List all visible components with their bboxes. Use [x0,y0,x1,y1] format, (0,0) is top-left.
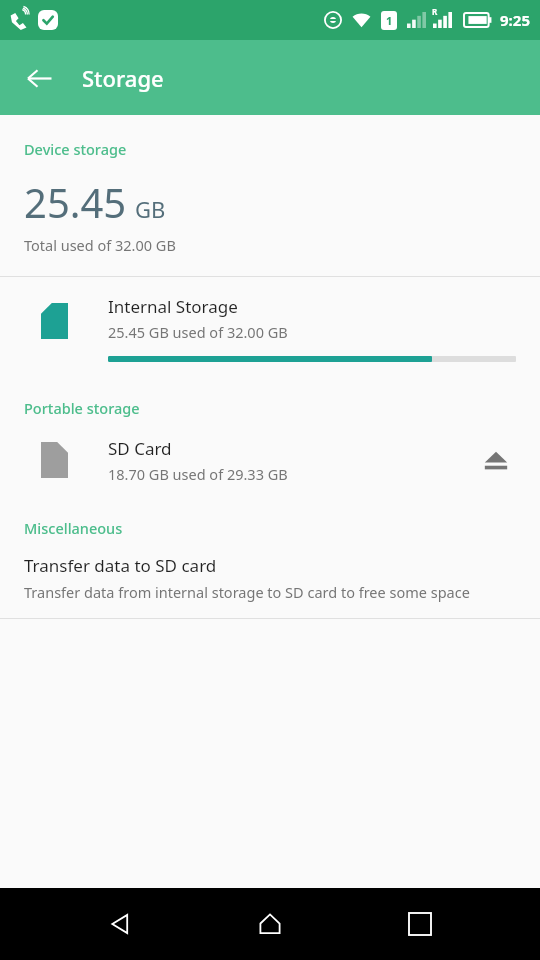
staticText: Miscellaneous [24,518,123,538]
button[interactable]: Home [240,894,300,954]
staticText: 9:25 [500,10,530,30]
staticText: 25.45 [24,175,127,229]
button[interactable]: SD Card [0,418,540,498]
staticText: 1 [386,13,393,28]
staticText: Storage [82,63,164,93]
staticText: Internal Storage [108,295,238,318]
staticText: GB [135,194,166,224]
button[interactable]: Recent apps [390,894,450,954]
button[interactable]: Eject SD card [468,432,524,488]
button[interactable]: Back [12,51,66,105]
staticText: Portable storage [24,398,140,418]
staticText: Transfer data from internal storage to S… [24,582,470,602]
staticText: Transfer data to SD card [24,554,217,577]
staticText: R [432,6,438,17]
button[interactable]: Back [90,894,150,954]
button[interactable]: Transfer data to SD card [0,538,540,618]
staticText: 25.45 GB used of 32.00 GB [108,322,288,342]
button[interactable]: Internal Storage [0,277,540,376]
staticText: Device storage [24,139,127,159]
staticText: 18.70 GB used of 29.33 GB [108,464,288,484]
staticText: Total used of 32.00 GB [24,235,176,255]
staticText: SD Card [108,437,172,460]
